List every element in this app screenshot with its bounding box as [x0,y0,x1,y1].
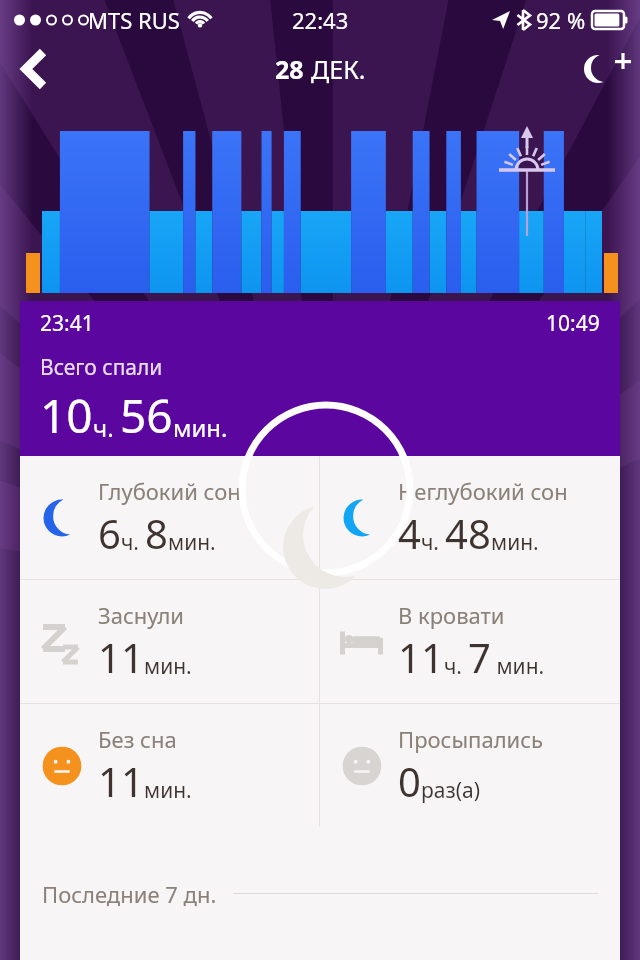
staticText: ч. [444,652,468,681]
staticText: 28 [275,52,311,86]
button[interactable]: Просыпались [320,704,620,827]
staticText: 92 % [536,5,586,35]
button[interactable]: Back [0,40,64,98]
staticText: 10 [40,384,93,447]
staticText: 22:43 [292,5,349,35]
staticText: мин. [491,528,539,557]
staticText: мин. [168,528,216,557]
staticText: 6 [98,506,121,560]
staticText: ч. [121,528,145,557]
staticText: Просыпались [398,724,544,754]
staticText: мин. [173,411,228,444]
staticText: 11 [398,630,444,684]
staticText: 8 [145,506,168,560]
staticText: Всего спали [40,353,163,382]
staticText: 7 [468,630,491,684]
staticText: MTS RUS [88,5,180,35]
staticText: 23:41 [40,309,94,338]
button[interactable]: Неглубокий сон [320,456,620,579]
staticText: 48 [445,506,491,560]
staticText: 11 [98,754,144,808]
staticText: Неглубокий сон [398,476,568,506]
staticText: ДЕК. [311,52,366,86]
staticText: 0 [398,754,421,808]
button[interactable]: Без сна [20,704,319,827]
staticText: 10:49 [546,309,600,338]
button[interactable]: В кровати [320,580,620,703]
staticText: мин. [144,652,192,681]
button[interactable]: Add sleep [570,40,640,98]
staticText: 11 [98,630,144,684]
staticText: Заснули [98,600,184,630]
staticText: 56 [120,384,173,447]
staticText: раз(а) [421,776,480,805]
staticText: В кровати [398,600,505,630]
staticText: ч. [421,528,445,557]
button[interactable]: Заснули [20,580,319,703]
staticText: мин. [144,776,192,805]
staticText: Глубокий сон [98,476,241,506]
staticText: Последние 7 дн. [42,879,217,909]
button[interactable]: Глубокий сон [20,456,319,579]
staticText: Без сна [98,724,177,754]
staticText: 4 [398,506,421,560]
staticText: ч. [93,411,120,444]
staticText: мин. [491,652,545,681]
